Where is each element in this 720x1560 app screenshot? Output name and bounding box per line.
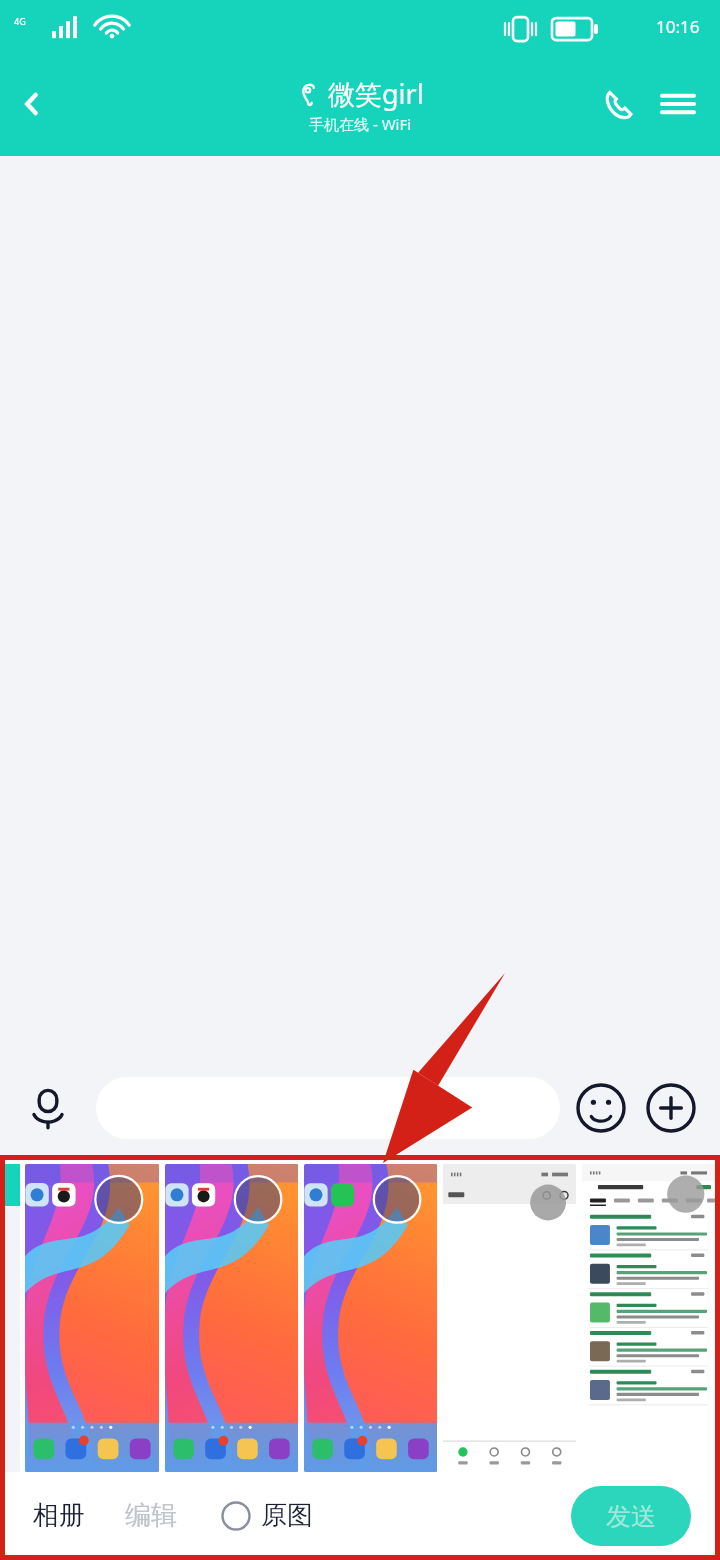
staticText: 微笑girl <box>328 75 424 112</box>
button[interactable]: 原图 <box>217 1495 317 1536</box>
staticText: 编辑 <box>125 1499 177 1532</box>
button[interactable]: More <box>636 1073 706 1143</box>
button[interactable]: Voice <box>10 1070 86 1146</box>
staticText: 发送 <box>606 1501 656 1532</box>
button[interactable] <box>25 1164 159 1472</box>
button[interactable] <box>582 1164 715 1472</box>
staticText: 10:16 <box>656 15 700 38</box>
button[interactable] <box>304 1164 437 1472</box>
staticText: 原图 <box>261 1499 313 1532</box>
button[interactable]: 相册 <box>29 1495 89 1536</box>
button[interactable]: 编辑 <box>121 1495 181 1536</box>
button[interactable] <box>165 1164 298 1472</box>
staticText: 4G <box>14 15 26 27</box>
button[interactable]: 发送 <box>571 1486 691 1546</box>
button[interactable]: Back <box>0 72 64 136</box>
staticText: 手机在线 - WiFi <box>309 114 412 134</box>
button[interactable]: Emoji <box>566 1073 636 1143</box>
staticText: 相册 <box>33 1499 85 1532</box>
button[interactable] <box>443 1164 576 1472</box>
button[interactable]: Call <box>588 74 648 134</box>
button[interactable]: Menu <box>648 74 708 134</box>
button[interactable] <box>96 1077 560 1139</box>
